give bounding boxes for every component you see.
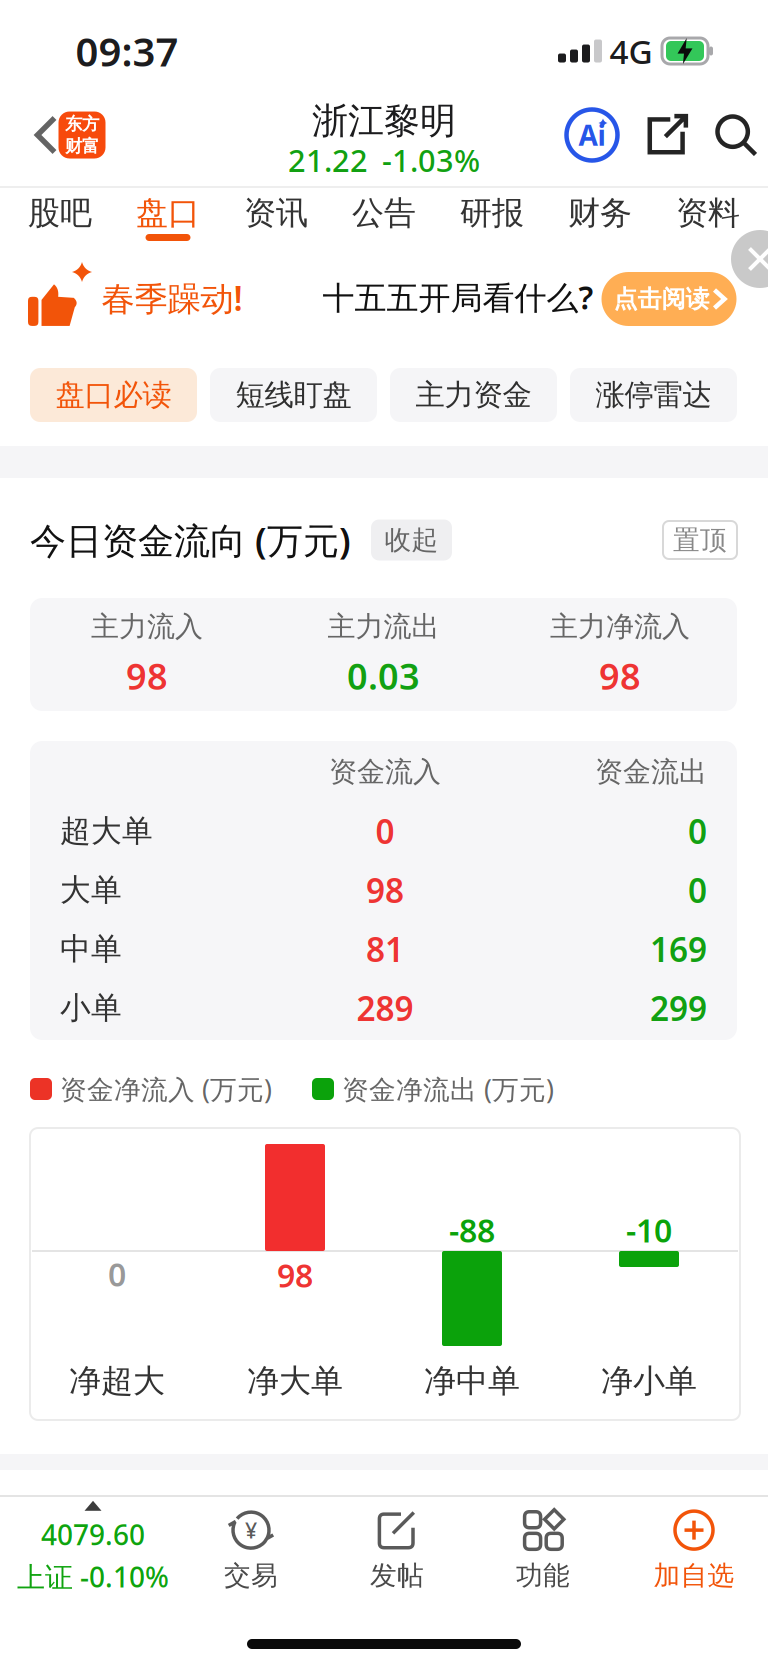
staticText: 81 xyxy=(366,927,404,971)
staticText: 资金净流入 (万元) xyxy=(60,1071,272,1107)
staticText: 净大单 xyxy=(247,1361,343,1401)
staticText: 资料 xyxy=(676,193,740,233)
button[interactable]: 置顶 xyxy=(663,521,737,559)
button[interactable]: Back xyxy=(23,104,68,166)
staticText: 浙江黎明 xyxy=(312,99,456,143)
staticText: 09:37 xyxy=(75,24,178,77)
staticText: 净超大 xyxy=(69,1361,165,1401)
staticText: 4G xyxy=(609,29,652,73)
staticText: 主力流入 xyxy=(91,609,203,644)
button[interactable]: 交易 xyxy=(181,1509,321,1593)
staticText: 主力资金 xyxy=(415,377,531,413)
staticText: 0 xyxy=(688,868,707,912)
staticText: 今日资金流向 (万元) xyxy=(30,516,351,564)
staticText: 研报 xyxy=(460,193,524,233)
staticText: 股吧 xyxy=(28,193,92,233)
button[interactable]: 东方财富 xyxy=(58,111,105,158)
staticText: 功能 xyxy=(516,1559,570,1592)
staticText: 169 xyxy=(650,927,707,971)
staticText: 交易 xyxy=(224,1559,278,1592)
staticText: 主力净流入 xyxy=(550,609,690,644)
button[interactable]: 财务 xyxy=(562,185,638,241)
staticText: 0.03 xyxy=(347,652,420,700)
staticText: -1.03% xyxy=(382,140,480,180)
staticText: 收起 xyxy=(384,524,438,556)
button[interactable]: Share xyxy=(638,106,695,163)
staticText: 财务 xyxy=(568,193,632,233)
button[interactable]: 股吧 xyxy=(22,185,98,241)
staticText: 主力流出 xyxy=(327,609,439,644)
staticText: 盘口 xyxy=(136,193,200,233)
button[interactable]: Search xyxy=(707,106,764,163)
staticText: 财富 xyxy=(65,135,99,157)
staticText: 东方 xyxy=(65,113,99,134)
staticText: 0 xyxy=(688,809,707,853)
button[interactable]: Close xyxy=(731,230,768,288)
button[interactable]: 上证指数 xyxy=(0,1506,198,1590)
staticText: 盘口必读 xyxy=(55,377,171,413)
staticText: 净小单 xyxy=(601,1361,697,1401)
staticText: 资讯 xyxy=(244,193,308,233)
staticText: 公告 xyxy=(352,193,416,233)
button[interactable]: 盘口 xyxy=(130,185,206,241)
staticText: 289 xyxy=(356,986,413,1030)
button[interactable]: 点击阅读 xyxy=(601,272,736,326)
staticText: 净中单 xyxy=(424,1361,520,1401)
button[interactable]: 收起 xyxy=(371,519,452,560)
staticText: 21.22 xyxy=(288,140,368,180)
button[interactable]: 盘口必读 xyxy=(30,368,197,422)
staticText: 超大单 xyxy=(60,812,153,850)
staticText: 点击阅读 xyxy=(613,284,709,314)
button[interactable]: AI assistant xyxy=(564,107,620,163)
button[interactable]: 短线盯盘 xyxy=(210,368,377,422)
staticText: 涨停雷达 xyxy=(595,377,711,413)
staticText: 98 xyxy=(277,1254,313,1296)
staticText: 0 xyxy=(108,1253,126,1295)
staticText: Ai xyxy=(578,116,605,154)
staticText: 大单 xyxy=(60,871,122,909)
staticText: 0 xyxy=(375,809,394,853)
staticText: ¥ xyxy=(245,1516,257,1544)
staticText: 98 xyxy=(366,868,404,912)
staticText: 春季躁动! xyxy=(101,276,242,320)
staticText: 短线盯盘 xyxy=(235,377,351,413)
button[interactable]: 功能 xyxy=(473,1509,613,1593)
staticText: 4079.60 xyxy=(41,1516,145,1553)
staticText: 加自选 xyxy=(653,1559,734,1592)
staticText: 98 xyxy=(126,652,168,700)
button[interactable]: 研报 xyxy=(454,185,530,241)
staticText: 小单 xyxy=(60,989,122,1027)
button[interactable]: 发帖 xyxy=(327,1509,467,1593)
staticText: -10 xyxy=(626,1209,672,1251)
staticText: 置顶 xyxy=(673,524,727,556)
staticText: 十五五开局看什么? xyxy=(322,276,593,318)
staticText: 资金流出 xyxy=(595,755,707,789)
button[interactable]: 加自选 xyxy=(624,1509,764,1593)
staticText: 资金流入 xyxy=(329,755,441,789)
button[interactable]: 资料 xyxy=(670,185,746,241)
button[interactable]: 主力资金 xyxy=(390,368,557,422)
staticText: 上证 -0.10% xyxy=(17,1558,169,1595)
staticText: -88 xyxy=(449,1209,495,1251)
staticText: 发帖 xyxy=(370,1559,424,1592)
staticText: 98 xyxy=(599,652,641,700)
button[interactable]: 公告 xyxy=(346,185,422,241)
staticText: 299 xyxy=(650,986,707,1030)
button[interactable]: 资讯 xyxy=(238,185,314,241)
staticText: 资金净流出 (万元) xyxy=(342,1071,554,1107)
staticText: 中单 xyxy=(60,930,122,968)
button[interactable]: 涨停雷达 xyxy=(570,368,737,422)
